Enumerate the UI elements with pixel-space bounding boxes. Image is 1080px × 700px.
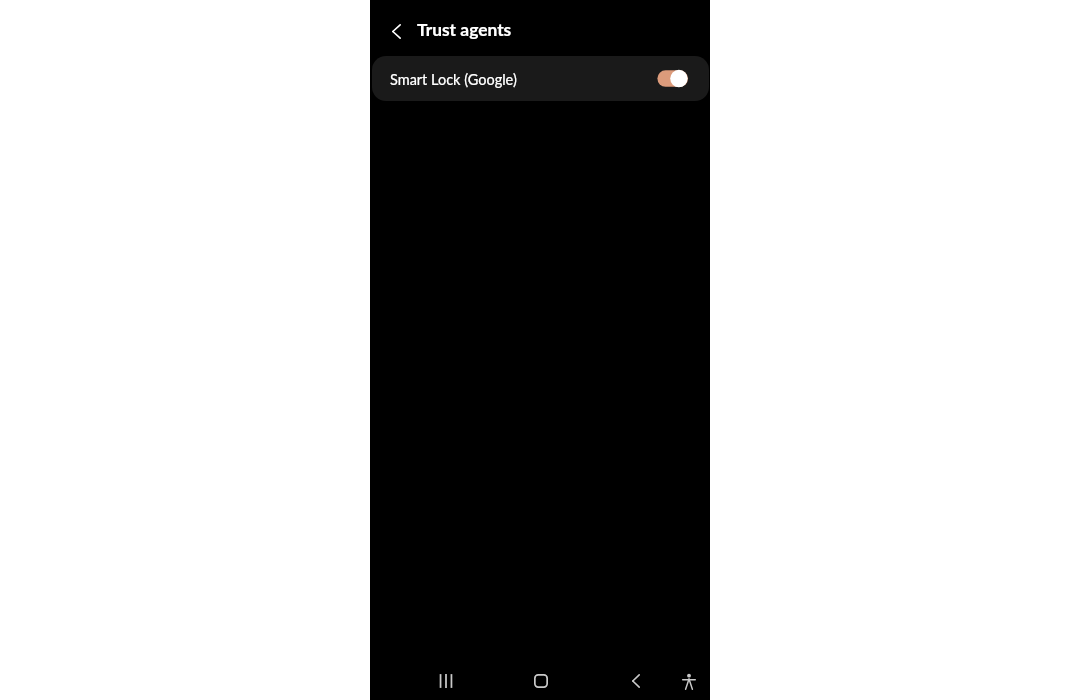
staticText: Smart Lock (Google) [390,71,517,88]
button[interactable]: Navigate up [382,17,410,45]
button[interactable]: Back [619,664,653,698]
staticText: Trust agents [417,19,512,40]
button[interactable]: Recent apps [429,664,463,698]
button[interactable]: Smart Lock (Google) switch, on [657,69,689,89]
button[interactable]: Accessibility [672,664,706,698]
button[interactable]: Smart Lock (Google) [372,56,709,101]
button[interactable]: Home [524,664,558,698]
